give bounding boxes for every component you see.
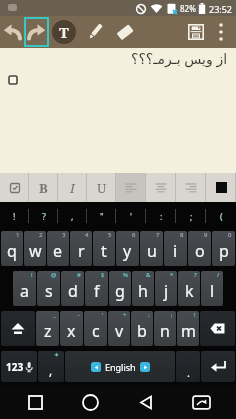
button[interactable]: [0, 173, 29, 202]
staticText: !: [194, 311, 196, 319]
button[interactable]: .: [176, 351, 200, 382]
button[interactable]: p: [212, 231, 235, 266]
staticText: :: [160, 210, 163, 222]
button[interactable]: q: [1, 231, 23, 266]
button[interactable]: d: [61, 271, 84, 306]
button[interactable]: [116, 173, 146, 202]
staticText: f: [94, 280, 100, 302]
button[interactable]: B: [29, 173, 58, 202]
button[interactable]: w: [24, 231, 46, 266]
button[interactable]: [126, 385, 166, 419]
button[interactable]: ?: [29, 204, 58, 228]
button[interactable]: [70, 385, 110, 419]
staticText: z: [44, 320, 52, 342]
button[interactable]: [112, 16, 138, 48]
staticText: 7: [156, 231, 160, 239]
staticText: t: [101, 240, 107, 262]
staticText: x: [67, 320, 76, 342]
button[interactable]: [206, 173, 236, 202]
button[interactable]: i: [164, 231, 187, 266]
staticText: a: [20, 280, 29, 302]
staticText: v: [115, 320, 124, 342]
button[interactable]: r: [70, 231, 92, 266]
button[interactable]: g: [109, 271, 131, 306]
button[interactable]: [0, 16, 24, 48]
button[interactable]: English: [65, 351, 175, 382]
staticText: ✦: [54, 351, 60, 358]
button[interactable]: u: [140, 231, 163, 266]
button[interactable]: [8, 75, 19, 86]
button[interactable]: !: [0, 204, 29, 228]
button[interactable]: ,: [38, 351, 64, 382]
button[interactable]: o: [188, 231, 211, 266]
button[interactable]: z: [36, 311, 59, 346]
staticText: 1: [16, 231, 20, 239]
button[interactable]: :: [146, 204, 176, 228]
button[interactable]: e: [47, 231, 69, 266]
staticText: ": [100, 210, 104, 222]
staticText: English: [105, 361, 136, 373]
button[interactable]: c: [84, 311, 107, 346]
staticText: .: [187, 365, 190, 380]
button[interactable]: h: [132, 271, 154, 306]
button[interactable]: [210, 16, 232, 48]
button[interactable]: [15, 385, 55, 419]
staticText: I: [70, 179, 75, 197]
staticText: 0: [228, 231, 232, 239]
button[interactable]: x: [60, 311, 83, 346]
staticText: ,: [71, 210, 74, 222]
button[interactable]: [200, 311, 235, 346]
button[interactable]: y: [116, 231, 139, 266]
button[interactable]: s: [37, 271, 60, 306]
staticText: j: [164, 280, 169, 302]
staticText: #: [77, 271, 81, 279]
button[interactable]: t: [93, 231, 115, 266]
button[interactable]: ": [87, 204, 116, 228]
staticText: ': [102, 311, 104, 319]
button[interactable]: j: [155, 271, 177, 306]
button[interactable]: b: [131, 311, 153, 346]
staticText: :: [148, 311, 150, 319]
button[interactable]: [82, 16, 108, 48]
staticText: s: [45, 280, 53, 302]
staticText: *: [170, 271, 174, 279]
staticText: i: [173, 240, 178, 262]
staticText: ;: [171, 311, 173, 319]
staticText: $: [101, 271, 105, 279]
button[interactable]: n: [154, 311, 176, 346]
staticText: ?: [194, 271, 197, 279]
staticText: B: [39, 179, 48, 197]
staticText: 123: [6, 360, 24, 374]
staticText: 9: [204, 231, 208, 239]
button[interactable]: U: [87, 173, 116, 202]
button[interactable]: v: [108, 311, 130, 346]
button[interactable]: [26, 19, 47, 45]
staticText: +: [123, 311, 127, 319]
staticText: ': [130, 210, 133, 222]
staticText: u: [147, 240, 157, 262]
button[interactable]: l: [201, 271, 223, 306]
button[interactable]: m: [177, 311, 199, 346]
button[interactable]: (: [206, 204, 236, 228]
button[interactable]: 123: [1, 351, 37, 382]
button[interactable]: I: [58, 173, 87, 202]
button[interactable]: [146, 173, 176, 202]
staticText: e: [53, 240, 63, 262]
button[interactable]: [1, 311, 35, 346]
button[interactable]: ;: [176, 204, 206, 228]
staticText: (: [220, 210, 223, 222]
staticText: p: [219, 240, 229, 262]
button[interactable]: f: [85, 271, 108, 306]
button[interactable]: [181, 385, 221, 419]
button[interactable]: [176, 173, 206, 202]
staticText: _: [53, 311, 56, 319]
button[interactable]: a: [13, 271, 36, 306]
button[interactable]: ': [116, 204, 146, 228]
button[interactable]: [201, 351, 235, 382]
staticText: @: [51, 271, 57, 279]
button[interactable]: ,: [58, 204, 87, 228]
staticText: 4: [85, 231, 89, 239]
button[interactable]: k: [178, 271, 200, 306]
button[interactable]: T: [51, 16, 77, 48]
button[interactable]: [182, 16, 210, 48]
